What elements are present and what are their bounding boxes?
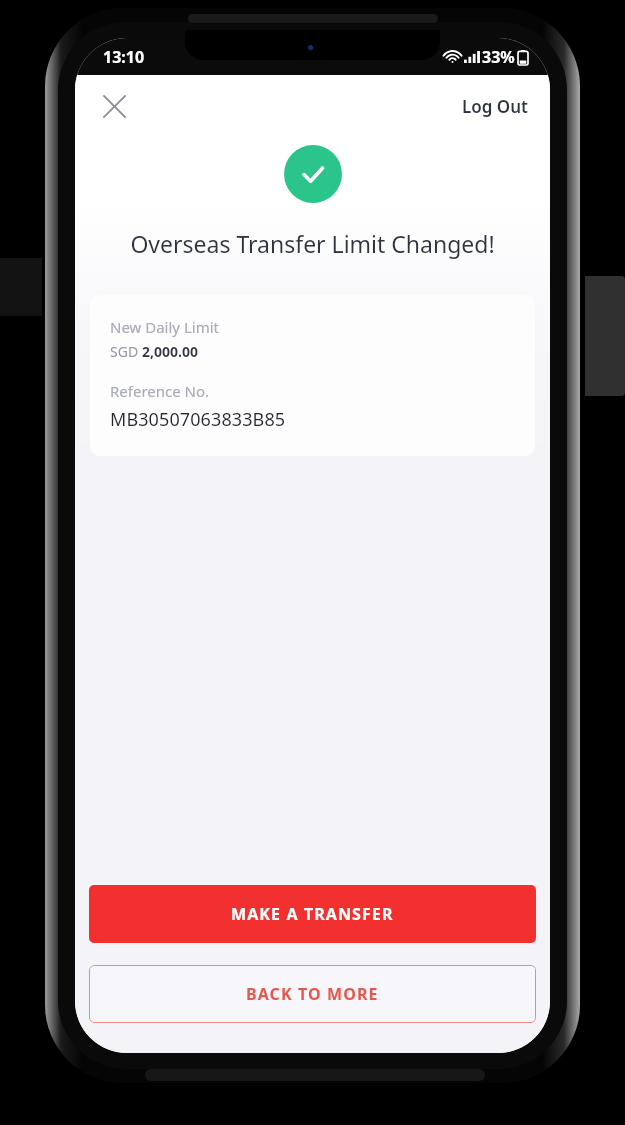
- staticText: Log Out: [462, 95, 528, 118]
- staticText: 2,000.00: [142, 342, 198, 361]
- button[interactable]: Close: [91, 83, 137, 129]
- button[interactable]: MAKE A TRANSFER: [89, 885, 536, 943]
- staticText: MAKE A TRANSFER: [231, 903, 394, 925]
- staticText: BACK TO MORE: [246, 983, 379, 1005]
- staticText: 33%: [482, 46, 515, 68]
- staticText: Reference No.: [110, 381, 210, 401]
- button[interactable]: New Daily Limit: [90, 295, 535, 456]
- staticText: SGD: [110, 342, 142, 361]
- staticText: 13:10: [103, 46, 145, 68]
- staticText: New Daily Limit: [110, 317, 219, 337]
- button[interactable]: Log Out: [454, 87, 536, 126]
- staticText: MB30507063833B85: [110, 407, 286, 432]
- button[interactable]: BACK TO MORE: [89, 965, 536, 1023]
- staticText: Overseas Transfer Limit Changed!: [91, 228, 534, 259]
